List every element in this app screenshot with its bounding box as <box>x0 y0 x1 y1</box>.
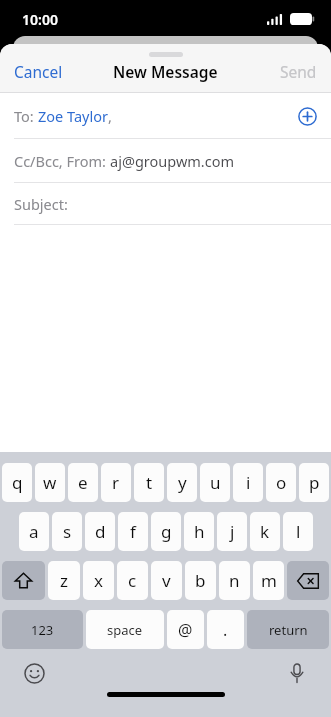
button[interactable]: v <box>151 561 182 600</box>
button[interactable]: Shift <box>2 561 45 600</box>
button[interactable]: o <box>266 463 296 502</box>
button[interactable]: Subject: <box>0 183 331 224</box>
staticText: w <box>43 471 57 494</box>
staticText: @ <box>178 619 193 641</box>
button[interactable]: m <box>253 561 284 600</box>
staticText: z <box>60 569 68 592</box>
staticText: New Message <box>113 61 218 82</box>
button[interactable]: u <box>200 463 230 502</box>
staticText: . <box>223 619 228 641</box>
button[interactable]: l <box>283 512 313 551</box>
staticText: u <box>210 471 221 494</box>
staticText: To: <box>14 106 38 126</box>
staticText: l <box>296 520 301 543</box>
staticText: f <box>130 520 136 543</box>
button[interactable]: . <box>207 610 244 649</box>
button[interactable]: a <box>19 512 49 551</box>
staticText: o <box>276 471 287 494</box>
button[interactable]: 123 <box>2 610 83 649</box>
staticText: m <box>261 569 277 592</box>
staticText: 123 <box>31 621 54 639</box>
button[interactable]: p <box>299 463 329 502</box>
button[interactable]: t <box>134 463 164 502</box>
button[interactable]: Dictation <box>283 659 311 687</box>
staticText: n <box>229 569 240 592</box>
staticText: Subject: <box>14 194 68 214</box>
button[interactable]: x <box>83 561 114 600</box>
staticText: v <box>162 569 171 592</box>
button[interactable]: Cancel <box>0 54 77 89</box>
button[interactable]: k <box>250 512 280 551</box>
button[interactable]: return <box>247 610 329 649</box>
staticText: k <box>260 520 270 543</box>
staticText: b <box>195 569 206 592</box>
staticText: a <box>29 520 39 543</box>
staticText: , <box>108 106 112 126</box>
button[interactable]: b <box>185 561 216 600</box>
staticText: d <box>95 520 106 543</box>
button[interactable]: n <box>219 561 250 600</box>
staticText: aj@groupwm.com <box>110 151 235 171</box>
staticText: Cc/Bcc, From: <box>14 151 110 171</box>
button[interactable]: q <box>2 463 32 502</box>
button[interactable]: z <box>48 561 80 600</box>
staticText: Send <box>280 61 317 82</box>
button[interactable]: Backspace <box>287 561 329 600</box>
staticText: t <box>146 471 153 494</box>
staticText: c <box>128 569 137 592</box>
staticText: j <box>230 520 235 543</box>
staticText: i <box>246 471 251 494</box>
button[interactable]: Add recipient <box>292 101 322 131</box>
button[interactable]: y <box>167 463 197 502</box>
staticText: Cancel <box>14 61 63 82</box>
button[interactable]: @ <box>167 610 204 649</box>
button[interactable]: h <box>184 512 214 551</box>
staticText: r <box>112 471 120 494</box>
button[interactable]: d <box>85 512 115 551</box>
staticText: p <box>309 471 320 494</box>
button[interactable]: s <box>52 512 82 551</box>
button[interactable]: w <box>35 463 65 502</box>
button[interactable]: j <box>217 512 247 551</box>
button[interactable]: i <box>233 463 263 502</box>
staticText: 10:00 <box>22 10 58 29</box>
staticText: q <box>12 471 23 494</box>
staticText: x <box>94 569 103 592</box>
button[interactable]: f <box>118 512 148 551</box>
button[interactable]: e <box>68 463 98 502</box>
button[interactable]: To: <box>0 93 331 138</box>
staticText: return <box>269 621 308 639</box>
button[interactable]: Emoji keyboard <box>20 659 48 687</box>
button[interactable]: g <box>151 512 181 551</box>
staticText: h <box>194 520 205 543</box>
button[interactable]: r <box>101 463 131 502</box>
button[interactable]: c <box>117 561 148 600</box>
staticText: g <box>161 520 172 543</box>
staticText: y <box>178 471 187 494</box>
button[interactable]: Send <box>266 54 331 89</box>
staticText: Zoe Taylor <box>38 106 108 126</box>
button[interactable]: Cc/Bcc, From: <box>0 139 331 182</box>
staticText: space <box>107 621 143 639</box>
staticText: s <box>63 520 72 543</box>
staticText: e <box>78 471 88 494</box>
button[interactable]: space <box>86 610 164 649</box>
